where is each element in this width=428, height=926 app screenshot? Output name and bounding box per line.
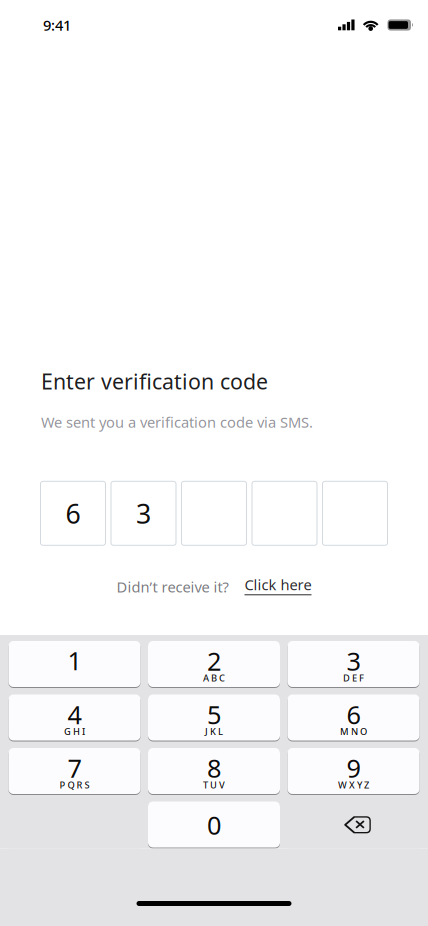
button[interactable]: 6 xyxy=(287,694,419,741)
staticText: G H I xyxy=(64,725,85,738)
staticText: 5 xyxy=(207,698,221,731)
staticText: Didn’t receive it? xyxy=(116,577,228,597)
staticText: 0 xyxy=(207,808,221,842)
button[interactable]: Digit 6 xyxy=(40,481,106,546)
staticText: Enter verification code xyxy=(41,367,268,395)
staticText: 6 xyxy=(346,698,360,731)
staticText: 9 xyxy=(346,751,360,785)
button[interactable]: Delete xyxy=(287,801,419,848)
button[interactable]: Click here to resend code xyxy=(244,575,311,599)
staticText: 9:41 xyxy=(43,15,71,35)
staticText: 4 xyxy=(67,698,81,731)
staticText: J K L xyxy=(205,725,223,738)
button[interactable]: Empty digit xyxy=(251,481,317,546)
staticText: A B C xyxy=(203,672,225,684)
staticText: 2 xyxy=(207,644,221,678)
button[interactable]: 9 xyxy=(287,748,419,795)
staticText: T U V xyxy=(203,779,225,791)
button[interactable]: Empty digit xyxy=(322,481,388,546)
button[interactable]: 2 xyxy=(148,641,280,688)
staticText: 8 xyxy=(207,751,221,785)
button[interactable]: 3 xyxy=(287,641,419,688)
button[interactable]: 8 xyxy=(148,748,280,795)
staticText: 7 xyxy=(67,751,81,785)
staticText: M N O xyxy=(340,725,367,738)
staticText: 3 xyxy=(136,496,151,531)
button[interactable]: 1 xyxy=(8,641,140,688)
button[interactable]: 7 xyxy=(8,748,140,795)
button[interactable]: 4 xyxy=(8,694,140,741)
staticText: Click here xyxy=(244,575,311,594)
button[interactable]: Digit 3 xyxy=(110,481,176,546)
button[interactable]: 0 xyxy=(148,801,280,848)
button[interactable]: 5 xyxy=(148,694,280,741)
staticText: P Q R S xyxy=(59,779,89,791)
staticText: W X Y Z xyxy=(338,779,369,791)
staticText: 6 xyxy=(65,496,80,531)
button[interactable]: Empty digit xyxy=(181,481,247,546)
staticText: D E F xyxy=(343,672,364,684)
staticText: We sent you a verification code via SMS. xyxy=(41,412,313,432)
staticText: 3 xyxy=(346,644,360,678)
staticText: 1 xyxy=(67,644,81,677)
